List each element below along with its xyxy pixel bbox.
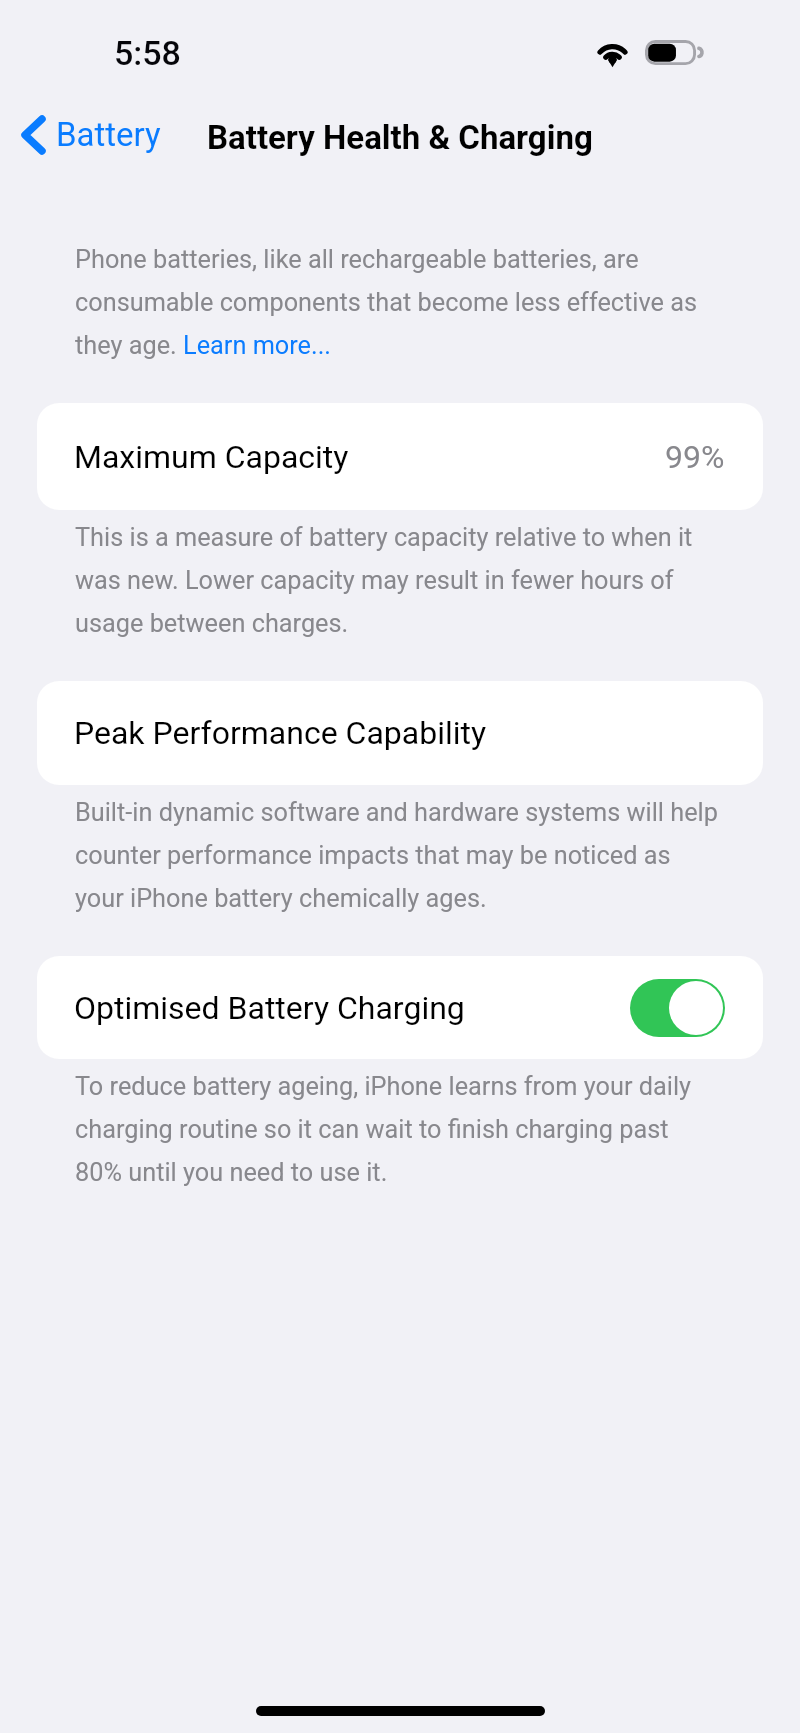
staticText: Built-in dynamic software and hardware s… xyxy=(75,798,721,913)
staticText: This is a measure of battery capacity re… xyxy=(75,523,721,638)
staticText: Maximum Capacity xyxy=(74,438,349,476)
staticText: 99% xyxy=(665,438,725,476)
staticText: To reduce battery ageing, iPhone learns … xyxy=(75,1072,721,1187)
button[interactable]: Peak Performance Capability xyxy=(37,681,763,785)
button[interactable]: Optimised Battery Charging xyxy=(37,956,763,1059)
button[interactable]: Battery xyxy=(14,111,169,158)
staticText: 5:58 xyxy=(114,33,181,73)
staticText: Battery xyxy=(56,115,161,154)
button[interactable]: Maximum Capacity xyxy=(37,403,763,510)
staticText: Optimised Battery Charging xyxy=(74,989,465,1027)
staticText: Phone batteries, like all rechargeable b… xyxy=(75,245,721,360)
button[interactable]: Optimised Battery Charging toggle xyxy=(630,979,725,1037)
staticText: Battery Health & Charging xyxy=(207,118,593,157)
staticText: Peak Performance Capability xyxy=(74,714,487,752)
